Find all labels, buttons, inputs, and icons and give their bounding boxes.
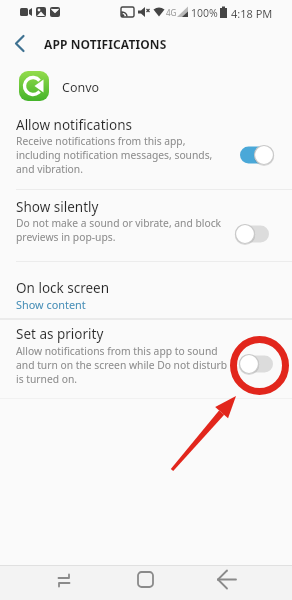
button[interactable] bbox=[235, 221, 279, 247]
staticText: Do not make a sound or vibrate, and bloc… bbox=[16, 216, 222, 230]
staticText: On lock screen bbox=[16, 279, 110, 297]
staticText: previews in pop-ups. bbox=[16, 230, 116, 244]
button[interactable] bbox=[208, 565, 248, 600]
staticText: APP NOTIFICATIONS bbox=[44, 36, 167, 52]
staticText: Show content bbox=[16, 297, 86, 312]
button[interactable] bbox=[0, 190, 292, 262]
button[interactable] bbox=[236, 142, 280, 168]
button[interactable] bbox=[46, 565, 86, 600]
staticText: and turn on the screen while Do not dist… bbox=[16, 358, 228, 372]
button[interactable] bbox=[126, 565, 166, 600]
button[interactable] bbox=[239, 351, 283, 377]
staticText: Convo bbox=[62, 79, 100, 96]
staticText: is turned on. bbox=[16, 372, 78, 386]
button[interactable] bbox=[0, 110, 292, 190]
staticText: Allow notifications from this app to sou… bbox=[16, 344, 218, 358]
staticText: Receive notifications from this app, bbox=[16, 134, 186, 148]
staticText: 4G bbox=[166, 7, 177, 18]
staticText: and vibration. bbox=[16, 162, 83, 176]
button[interactable] bbox=[0, 320, 292, 398]
button[interactable] bbox=[0, 64, 292, 108]
staticText: Allow notifications bbox=[16, 116, 132, 134]
staticText: Set as priority bbox=[16, 325, 104, 343]
staticText: 4:18 PM bbox=[231, 6, 273, 21]
button[interactable] bbox=[0, 262, 292, 318]
staticText: 100% bbox=[191, 6, 218, 20]
staticText: Show silently bbox=[16, 198, 99, 216]
staticText: including notification messages, sounds, bbox=[16, 148, 213, 162]
button[interactable]: APP NOTIFICATIONS bbox=[0, 24, 292, 62]
